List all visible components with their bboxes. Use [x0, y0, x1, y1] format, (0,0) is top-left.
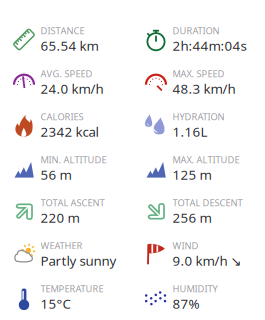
staticText: TOTAL ASCENT [40, 196, 104, 209]
staticText: 1.16L [172, 123, 207, 140]
staticText: 24.0 km/h [40, 80, 103, 97]
staticText: 15°C [40, 295, 70, 312]
staticText: 65.54 km [40, 37, 98, 54]
staticText: 2h:44m:04s [172, 37, 246, 54]
staticText: 87% [172, 295, 199, 312]
staticText: 48.3 km/h [172, 80, 235, 97]
staticText: TOTAL DESCENT [172, 196, 242, 209]
button[interactable]: TOTAL ASCENT [0, 190, 132, 233]
staticText: MAX. ALTITUDE [172, 153, 239, 166]
button[interactable]: DURATION [132, 18, 265, 61]
button[interactable]: AVG. SPEED [0, 61, 132, 104]
staticText: 2342 kcal [40, 123, 98, 140]
button[interactable]: MIN. ALTITUDE [0, 147, 132, 190]
staticText: WEATHER [40, 239, 82, 252]
button[interactable]: WEATHER [0, 233, 132, 276]
staticText: 256 m [172, 209, 211, 226]
staticText: DISTANCE [40, 24, 84, 37]
button[interactable]: HUMIDITY [132, 276, 265, 319]
staticText: MAX. SPEED [172, 67, 224, 80]
staticText: TEMPERATURE [40, 282, 103, 295]
staticText: 220 m [40, 209, 79, 226]
button[interactable]: MAX. SPEED [132, 61, 265, 104]
button[interactable]: MAX. ALTITUDE [132, 147, 265, 190]
staticText: MIN. ALTITUDE [40, 153, 106, 166]
staticText: Partly sunny [40, 252, 116, 269]
button[interactable]: CALORIES [0, 104, 132, 147]
staticText: HUMIDITY [172, 282, 217, 295]
staticText: CALORIES [40, 110, 83, 123]
button[interactable]: WIND [132, 233, 265, 276]
button[interactable]: DISTANCE [0, 18, 132, 61]
staticText: 56 m [40, 166, 71, 183]
staticText: WIND [172, 239, 198, 252]
staticText: AVG. SPEED [40, 67, 92, 80]
staticText: 125 m [172, 166, 211, 183]
staticText: HYDRATION [172, 110, 224, 123]
button[interactable]: TOTAL DESCENT [132, 190, 265, 233]
staticText: DURATION [172, 24, 219, 37]
staticText: 9.0 km/h ↘ [172, 252, 241, 269]
button[interactable]: TEMPERATURE [0, 276, 132, 319]
button[interactable]: HYDRATION [132, 104, 265, 147]
